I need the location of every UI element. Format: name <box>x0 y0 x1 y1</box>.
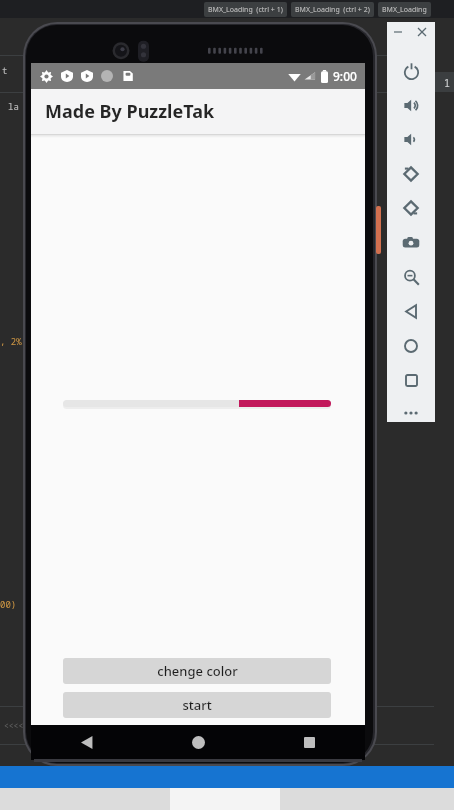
staticText: 1 <box>444 76 450 90</box>
button[interactable]: Home <box>397 332 425 360</box>
staticText: Made By PuzzleTak <box>45 99 215 124</box>
button[interactable]: Overview <box>397 366 425 394</box>
button[interactable]: Close <box>415 25 429 39</box>
staticText: BMX_Loading <box>382 5 427 15</box>
staticText: <<<< <box>4 720 24 731</box>
button[interactable]: Screenshot <box>397 229 425 257</box>
staticText: BMX_Loading (ctrl + 1) <box>208 5 283 15</box>
button[interactable]: Back <box>31 725 143 760</box>
button[interactable]: Rotate left <box>397 160 425 188</box>
staticText: 9:00 <box>333 68 357 84</box>
staticText: 00) <box>0 598 17 610</box>
button[interactable]: Overview <box>254 725 365 760</box>
button[interactable]: BMX_Loading <box>382 2 427 17</box>
button[interactable]: Minimise <box>391 25 405 39</box>
button[interactable]: Volume down <box>397 125 425 153</box>
staticText: , 2% <box>0 335 22 347</box>
staticText: chenge color <box>157 662 238 680</box>
button[interactable]: Zoom <box>397 263 425 291</box>
staticText: BMX_Loading (ctrl + 2) <box>295 5 370 15</box>
staticText: la <box>8 100 19 112</box>
button[interactable]: BMX_Loading (ctrl + 2) <box>295 2 370 17</box>
staticText: t <box>2 64 8 76</box>
button[interactable]: chenge color <box>63 658 331 684</box>
button[interactable]: Power <box>397 57 425 85</box>
button[interactable]: Volume up <box>397 91 425 119</box>
button[interactable]: More options <box>397 399 425 427</box>
button[interactable]: Back <box>397 297 425 325</box>
button[interactable]: Home <box>143 725 254 760</box>
button[interactable]: BMX_Loading (ctrl + 1) <box>208 2 283 17</box>
button[interactable]: Rotate right <box>397 194 425 222</box>
staticText: start <box>182 696 212 714</box>
button[interactable]: start <box>63 692 331 718</box>
